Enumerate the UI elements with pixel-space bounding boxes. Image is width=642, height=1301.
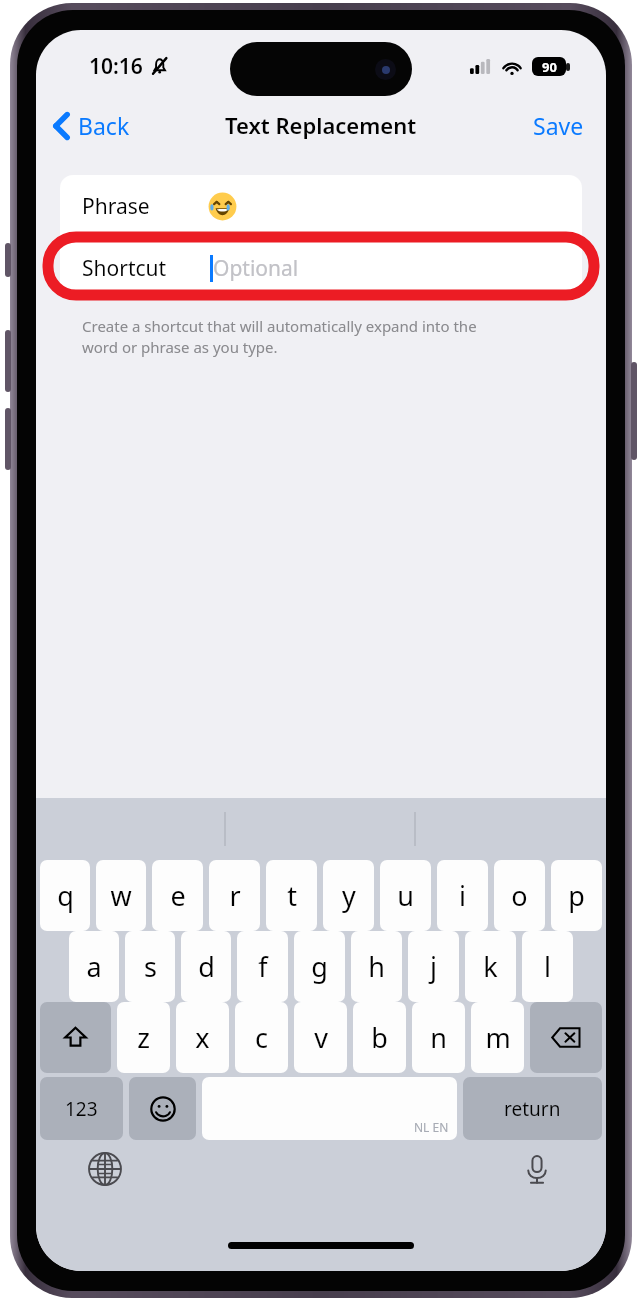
button[interactable]: s [125,931,175,1002]
staticText: r [229,877,241,914]
staticText: b [371,1019,388,1056]
button[interactable]: i [437,860,488,931]
button[interactable]: r [209,860,260,931]
staticText: o [511,877,528,914]
button[interactable]: o [494,860,545,931]
staticText: l [544,948,551,985]
staticText: q [57,877,74,914]
button[interactable]: NL EN [202,1077,457,1140]
button[interactable]: Shift [40,1002,111,1073]
button[interactable]: h [351,931,402,1002]
staticText: Back [78,110,130,141]
button[interactable]: Emoji [129,1077,196,1140]
button[interactable]: e [152,860,203,931]
button[interactable]: k [465,931,516,1002]
button[interactable]: g [294,931,345,1002]
staticText: c [255,1019,268,1056]
staticText: i [459,877,466,914]
staticText: Shortcut [82,254,167,283]
staticText: m [485,1019,511,1056]
button[interactable]: Backspace [530,1002,602,1073]
button[interactable]: Save [511,102,606,149]
staticText: w [110,877,132,914]
button[interactable]: c [235,1002,288,1073]
button[interactable]: p [551,860,602,931]
button[interactable]: n [412,1002,465,1073]
button[interactable]: a [69,931,119,1002]
staticText: h [368,948,385,985]
staticText: 123 [65,1096,98,1122]
staticText: k [483,948,498,985]
staticText: return [504,1096,561,1122]
staticText: Create a shortcut that will automaticall… [82,316,477,358]
staticText: Phrase [82,192,150,221]
button[interactable]: return [463,1077,602,1140]
staticText: n [430,1019,447,1056]
button[interactable]: y [323,860,374,931]
staticText: a [86,948,102,985]
staticText: d [198,948,215,985]
button[interactable]: w [96,860,146,931]
staticText: v [314,1019,328,1056]
button[interactable]: u [380,860,431,931]
button[interactable]: x [176,1002,229,1073]
staticText: 10:16 [89,52,143,81]
staticText: g [311,948,328,985]
staticText: p [568,877,585,914]
staticText: y [342,877,356,914]
staticText: e [170,877,186,914]
staticText: u [397,877,414,914]
button[interactable]: z [117,1002,170,1073]
staticText: Optional [213,254,299,283]
staticText: s [144,948,157,985]
button[interactable]: Switch keyboard [86,1150,124,1188]
staticText: t [287,877,297,914]
staticText: 90 [542,58,557,76]
staticText: x [195,1019,210,1056]
button[interactable]: Shortcut [60,237,582,299]
button[interactable]: Dictation [518,1150,556,1188]
staticText: f [258,948,268,985]
button[interactable]: m [471,1002,524,1073]
button[interactable]: 123 [40,1077,123,1140]
button[interactable]: Back [36,102,142,149]
staticText: j [430,948,437,985]
button[interactable]: b [353,1002,406,1073]
button[interactable]: Phrase [60,175,582,237]
button[interactable]: t [266,860,317,931]
button[interactable]: l [522,931,573,1002]
staticText: NL EN [414,1119,449,1135]
staticText: Text Replacement [225,110,417,140]
button[interactable]: q [40,860,90,931]
button[interactable]: v [294,1002,347,1073]
button[interactable]: d [181,931,231,1002]
button[interactable]: f [237,931,288,1002]
staticText: z [137,1019,150,1056]
button[interactable]: j [408,931,459,1002]
